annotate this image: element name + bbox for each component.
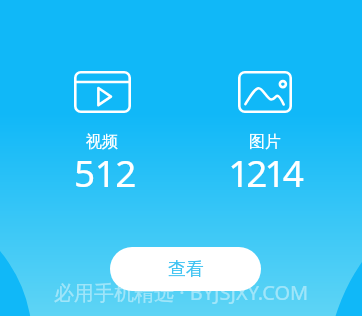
staticText: 1214 bbox=[228, 147, 301, 197]
button[interactable]: Video bbox=[45, 71, 159, 183]
staticText: 必用手机精选 · BYJSJXY.COM bbox=[54, 279, 309, 306]
staticText: 512 bbox=[74, 147, 136, 197]
button[interactable]: Pictures bbox=[208, 71, 322, 183]
staticText: 查看 bbox=[168, 258, 204, 281]
staticText: 视频 bbox=[86, 132, 118, 152]
staticText: 图片 bbox=[249, 132, 281, 152]
other: Pictures bbox=[238, 71, 292, 113]
button[interactable]: 查看 bbox=[110, 247, 261, 291]
other: Video bbox=[74, 71, 131, 113]
